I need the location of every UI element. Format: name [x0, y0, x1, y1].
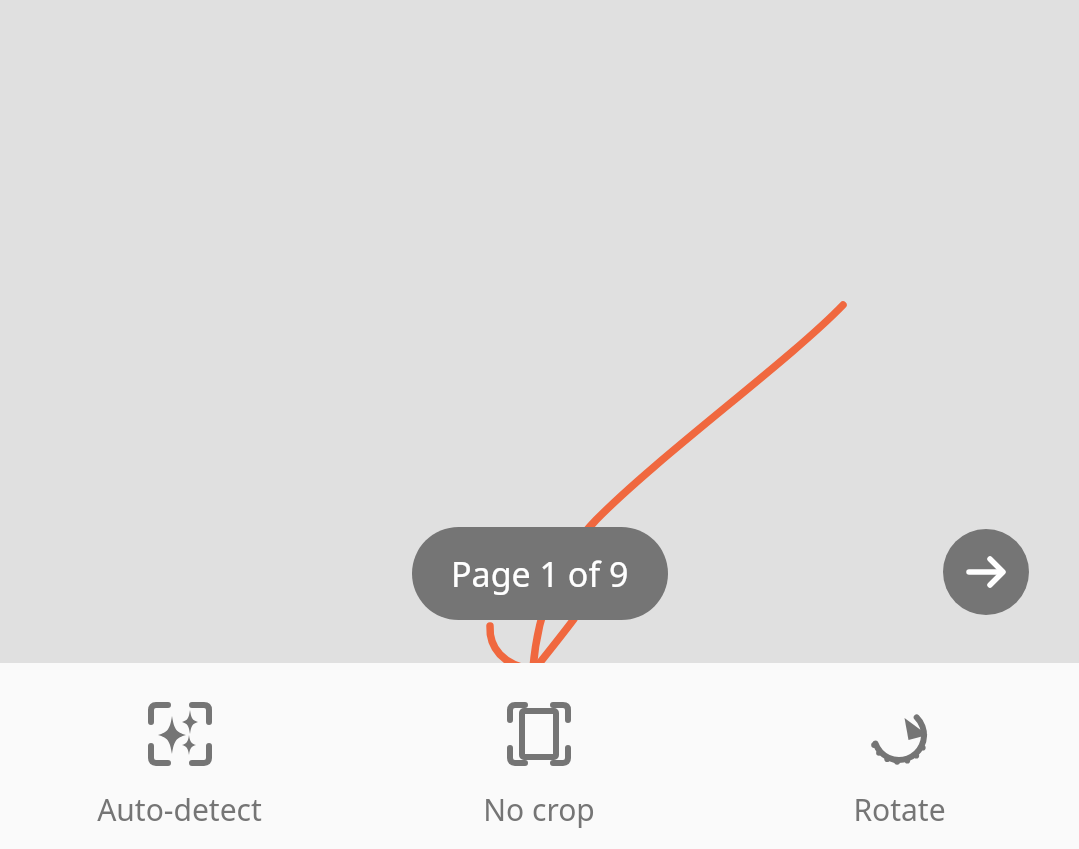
staticText: Page 1 of 9	[451, 551, 629, 597]
staticText: Rotate	[853, 789, 946, 830]
button[interactable]: Next page	[943, 529, 1029, 615]
staticText: Auto-detect	[97, 789, 262, 830]
staticText: No crop	[483, 789, 595, 830]
button[interactable]: No crop	[359, 663, 719, 849]
button[interactable]: Page 1 of 9	[412, 527, 668, 620]
button[interactable]: Rotate	[719, 663, 1079, 849]
button[interactable]: Auto-detect	[0, 663, 359, 849]
